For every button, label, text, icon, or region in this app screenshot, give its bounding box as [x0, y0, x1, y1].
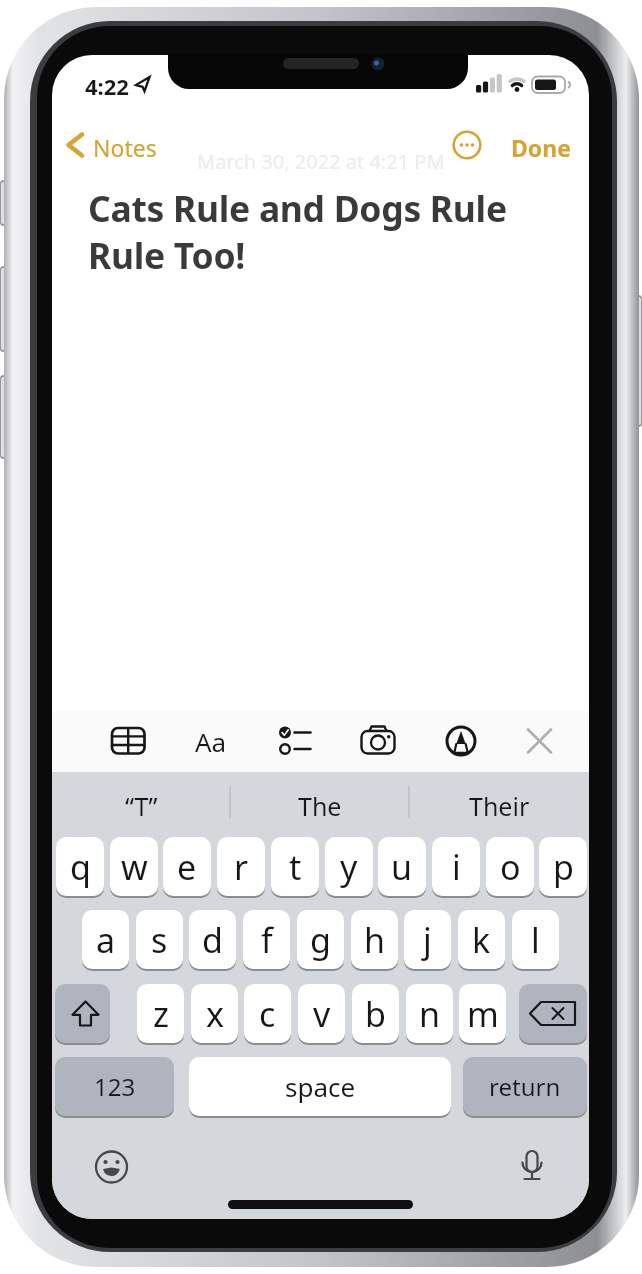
button[interactable]: k [458, 910, 505, 969]
staticText: n [419, 991, 441, 1037]
staticText: Their [469, 789, 530, 823]
staticText: March 30, 2022 at 4:21 PM [197, 148, 445, 175]
staticText: g [310, 917, 331, 963]
button[interactable]: d [189, 910, 236, 969]
staticText: b [365, 991, 386, 1037]
staticText: 123 [94, 1070, 136, 1103]
button[interactable]: f [243, 910, 290, 969]
staticText: y [340, 844, 358, 890]
staticText: q [70, 844, 91, 890]
button[interactable]: b [352, 984, 399, 1043]
staticText: d [202, 917, 223, 963]
button[interactable]: h [351, 910, 398, 969]
button[interactable]: z [137, 984, 184, 1043]
staticText: x [206, 991, 224, 1037]
staticText: m [467, 991, 499, 1037]
staticText: “T” [125, 789, 158, 823]
button[interactable]: “T” [61, 786, 221, 826]
staticText: return [489, 1070, 561, 1103]
button[interactable] [273, 721, 317, 761]
staticText: z [153, 991, 169, 1037]
staticText: Notes [93, 132, 157, 163]
staticText: i [452, 844, 461, 890]
button[interactable]: n [406, 984, 453, 1043]
staticText: Done [511, 132, 571, 163]
button[interactable]: t [271, 837, 319, 896]
button[interactable]: The [240, 786, 400, 826]
button[interactable]: x [191, 984, 238, 1043]
button[interactable]: Their [419, 786, 579, 826]
staticText: c [259, 991, 276, 1037]
staticText: w [121, 844, 148, 890]
button[interactable] [519, 984, 587, 1043]
staticText: Cats Rule and Dogs Rule Rule Too! [88, 184, 507, 280]
button[interactable]: u [378, 837, 426, 896]
button[interactable] [97, 1143, 137, 1183]
staticText: e [177, 844, 197, 890]
staticText: t [289, 844, 302, 890]
button[interactable]: i [432, 837, 480, 896]
staticText: r [234, 844, 249, 890]
staticText: a [96, 917, 116, 963]
button[interactable]: p [539, 837, 587, 896]
staticText: k [472, 917, 491, 963]
button[interactable]: c [244, 984, 291, 1043]
button[interactable]: g [297, 910, 344, 969]
staticText: Aa [195, 724, 227, 759]
button[interactable] [60, 125, 210, 165]
button[interactable]: a [82, 910, 129, 969]
staticText: o [500, 844, 521, 890]
button[interactable]: r [217, 837, 265, 896]
button[interactable]: q [56, 837, 104, 896]
button[interactable]: l [512, 910, 559, 969]
button[interactable] [450, 128, 484, 162]
button[interactable] [55, 984, 110, 1043]
button[interactable]: space [189, 1057, 451, 1116]
staticText: 4:22 [85, 71, 129, 101]
button[interactable]: o [486, 837, 534, 896]
button[interactable]: y [325, 837, 373, 896]
staticText: u [391, 844, 413, 890]
staticText: h [364, 917, 386, 963]
staticText: The [298, 789, 342, 823]
button[interactable] [512, 1143, 552, 1183]
staticText: l [531, 917, 540, 963]
button[interactable]: w [110, 837, 158, 896]
button[interactable]: e [163, 837, 211, 896]
button[interactable]: s [136, 910, 183, 969]
button[interactable]: Done [511, 132, 571, 163]
button[interactable]: v [298, 984, 345, 1043]
button[interactable]: m [459, 984, 506, 1043]
staticText: v [313, 991, 331, 1037]
staticText: j [423, 917, 432, 963]
button[interactable]: Aa [195, 724, 227, 759]
button[interactable]: return [463, 1057, 587, 1116]
button[interactable] [518, 721, 562, 761]
button[interactable]: 123 [55, 1057, 174, 1116]
button[interactable]: j [404, 910, 451, 969]
button[interactable] [355, 721, 401, 761]
staticText: s [151, 917, 168, 963]
staticText: space [285, 1069, 356, 1104]
button[interactable] [439, 721, 483, 761]
staticText: p [553, 844, 574, 890]
button[interactable] [104, 721, 152, 761]
staticText: f [261, 917, 273, 963]
